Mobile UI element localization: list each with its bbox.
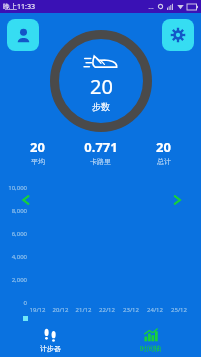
button[interactable]: Next week	[171, 194, 183, 206]
staticText: 0	[3, 299, 27, 307]
staticText: 19/12	[26, 306, 49, 314]
staticText: 2,000	[3, 276, 27, 284]
staticText: 25/12	[167, 306, 191, 314]
staticText: 时间轴	[140, 344, 161, 353]
button[interactable]: Profile	[7, 19, 39, 51]
staticText: 22/12	[95, 306, 119, 314]
button[interactable]: 计步器	[0, 323, 100, 357]
staticText: 0.771	[84, 138, 118, 156]
staticText: 步数	[92, 101, 110, 112]
staticText: 20/12	[49, 306, 72, 314]
staticText: 23/12	[119, 306, 143, 314]
staticText: 计步器	[40, 344, 61, 353]
staticText: 卡路里	[90, 157, 111, 166]
button[interactable]: 时间轴	[100, 323, 201, 357]
staticText: 平均	[31, 157, 45, 166]
staticText: 20	[30, 138, 45, 156]
staticText: 10,000	[3, 184, 27, 192]
button[interactable]: Previous week	[20, 194, 32, 206]
staticText: 晚上11:33	[3, 2, 35, 12]
staticText: 6,000	[3, 230, 27, 238]
button[interactable]: Settings	[162, 19, 194, 51]
staticText: 20	[156, 138, 171, 156]
button[interactable]: 20	[6, 138, 69, 166]
staticText: 24/12	[143, 306, 167, 314]
staticText: 21/12	[72, 306, 95, 314]
staticText: 8,000	[3, 207, 27, 215]
staticText: …	[148, 2, 154, 12]
staticText: 4,000	[3, 253, 27, 261]
button[interactable]: 20	[132, 138, 195, 166]
button[interactable]: 0.771	[69, 138, 132, 166]
staticText: 20	[90, 73, 113, 100]
staticText: 总计	[157, 157, 171, 166]
